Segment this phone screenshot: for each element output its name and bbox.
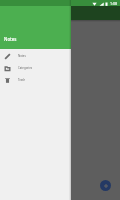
button[interactable]: Trash	[0, 74, 71, 86]
staticText: Categories	[18, 66, 33, 70]
button[interactable]	[0, 0, 120, 200]
staticText: 1:08	[110, 1, 118, 6]
staticText: Notes	[18, 54, 26, 58]
button[interactable]: Add note	[100, 180, 111, 191]
button[interactable]: Categories	[0, 62, 71, 74]
button[interactable]: Notes	[0, 50, 71, 62]
staticText: Notes	[4, 36, 17, 42]
staticText: Trash	[18, 78, 26, 82]
